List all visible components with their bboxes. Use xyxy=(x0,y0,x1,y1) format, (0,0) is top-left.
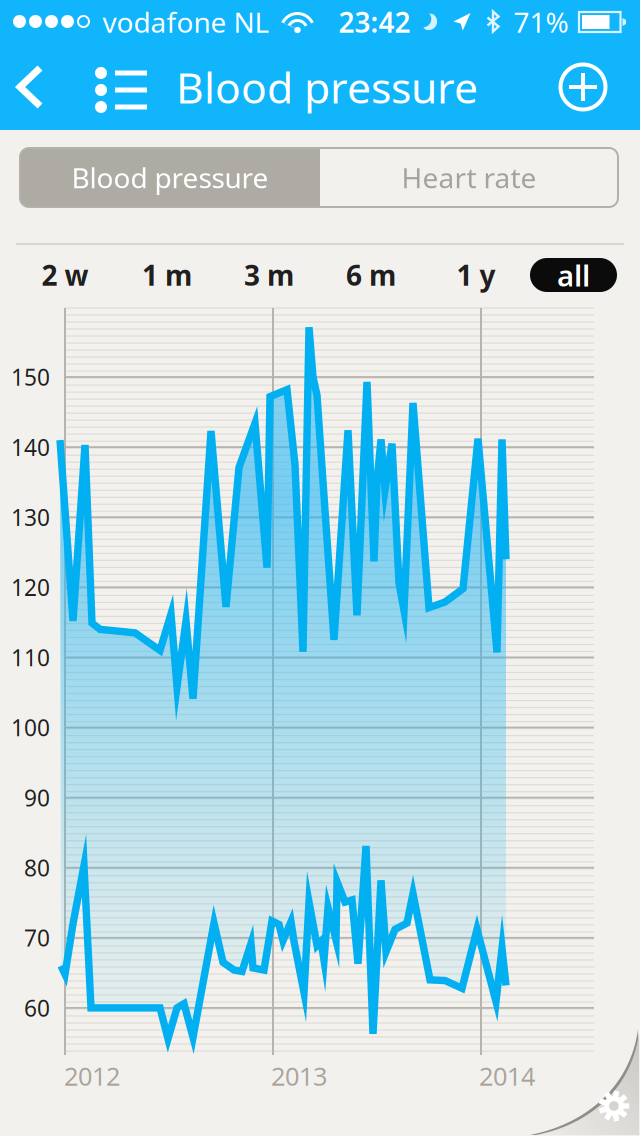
staticText: 80 xyxy=(24,853,50,883)
button[interactable]: 1 y xyxy=(422,257,530,293)
staticText: Heart rate xyxy=(401,159,536,196)
staticText: 23:42 xyxy=(338,3,410,41)
button[interactable]: 6 m xyxy=(320,257,422,293)
staticText: 90 xyxy=(24,782,50,813)
staticText: 3 m xyxy=(244,256,294,294)
button[interactable]: Back xyxy=(0,44,62,130)
button[interactable]: 2 w xyxy=(14,257,116,293)
staticText: Blood pressure xyxy=(71,159,268,196)
staticText: 140 xyxy=(11,432,50,462)
staticText: 71% xyxy=(513,3,568,41)
button[interactable]: Show list xyxy=(83,44,161,130)
staticText: 2014 xyxy=(479,1059,535,1093)
staticText: 120 xyxy=(11,572,50,602)
button[interactable]: all xyxy=(530,258,617,292)
staticText: 70 xyxy=(24,923,50,953)
staticText: 110 xyxy=(11,642,50,672)
button[interactable]: Blood pressure xyxy=(20,148,320,207)
staticText: vodafone NL xyxy=(102,3,269,41)
staticText: 1 m xyxy=(142,256,192,294)
staticText: 2013 xyxy=(271,1059,327,1093)
button[interactable]: Heart rate xyxy=(320,148,618,207)
staticText: 60 xyxy=(24,993,50,1023)
staticText: 100 xyxy=(11,712,50,742)
staticText: 2 w xyxy=(41,256,88,294)
staticText: 2012 xyxy=(64,1059,120,1093)
staticText: 1 y xyxy=(456,256,495,294)
button[interactable]: 3 m xyxy=(218,257,320,293)
staticText: 130 xyxy=(11,502,50,532)
button[interactable]: Add measurement xyxy=(547,44,619,130)
staticText: 6 m xyxy=(346,256,396,294)
button[interactable]: 1 m xyxy=(116,257,218,293)
staticText: 150 xyxy=(11,362,50,392)
staticText: all xyxy=(557,255,590,294)
staticText: Blood pressure xyxy=(176,59,478,115)
